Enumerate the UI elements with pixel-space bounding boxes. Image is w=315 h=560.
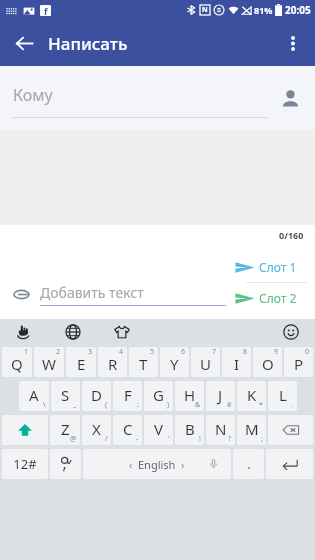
button[interactable]: 5	[129, 347, 158, 377]
staticText: 5	[150, 347, 155, 357]
staticText: Слот 2	[259, 290, 297, 306]
button[interactable]: Символы	[50, 449, 81, 479]
button[interactable]: D	[82, 381, 111, 411]
button[interactable]: Язык	[48, 319, 97, 345]
button[interactable]: L	[268, 381, 297, 411]
staticText: /	[105, 434, 108, 444]
staticText: D	[91, 385, 102, 405]
button[interactable]: V	[144, 415, 173, 445]
button[interactable]: J	[206, 381, 235, 411]
staticText: E	[77, 354, 86, 374]
staticText: 9	[274, 347, 279, 357]
staticText: T	[139, 354, 148, 374]
staticText: ?	[228, 434, 232, 444]
button[interactable]: Ещё	[275, 25, 311, 61]
staticText: N	[215, 419, 227, 439]
button[interactable]: Рукописный ввод	[0, 319, 48, 345]
staticText: M	[245, 419, 259, 439]
button[interactable]: 7	[191, 347, 220, 377]
staticText: 7	[212, 347, 217, 357]
staticText: '	[168, 434, 170, 444]
staticText: 2	[56, 347, 61, 357]
button[interactable]: Слот 2	[232, 283, 315, 313]
button[interactable]: Выбрать контакт	[273, 81, 307, 115]
button[interactable]: 1	[2, 347, 32, 377]
button[interactable]: H	[175, 381, 204, 411]
staticText: X	[92, 419, 101, 439]
staticText: Добавить текст	[40, 283, 144, 302]
staticText: K	[247, 385, 257, 405]
button[interactable]: Z	[50, 415, 80, 445]
button[interactable]: K	[237, 381, 266, 411]
button[interactable]: 2	[34, 347, 64, 377]
staticText: ‹	[129, 457, 133, 472]
button[interactable]: A	[19, 381, 49, 411]
button[interactable]: Тема	[97, 319, 146, 345]
staticText: *	[259, 400, 263, 410]
staticText: Написать	[48, 32, 128, 55]
staticText: O	[262, 354, 274, 374]
button[interactable]: Ввод	[266, 449, 313, 479]
button[interactable]: 3	[66, 347, 96, 377]
button[interactable]: 4	[98, 347, 127, 377]
button[interactable]: 12#	[2, 449, 48, 479]
button[interactable]: B	[175, 415, 204, 445]
staticText: U	[200, 354, 211, 374]
button[interactable]: 8	[222, 347, 251, 377]
staticText: Q	[11, 354, 23, 374]
staticText: J	[218, 385, 223, 405]
staticText: &	[195, 400, 201, 410]
staticText: _	[73, 400, 77, 410]
button[interactable]: 9	[253, 347, 282, 377]
staticText: ›	[181, 457, 185, 472]
staticText: C	[123, 419, 133, 439]
staticText: G	[153, 385, 164, 405]
staticText: Y	[170, 354, 179, 374]
staticText: 12#	[13, 455, 37, 473]
staticText: English	[138, 457, 176, 472]
staticText: A	[29, 385, 39, 405]
staticText: 0	[305, 347, 310, 357]
button[interactable]: Назад	[8, 27, 40, 59]
button[interactable]: .	[233, 449, 264, 479]
button[interactable]: C	[113, 415, 142, 445]
button[interactable]: Shift	[2, 415, 48, 445]
staticText: )	[167, 400, 170, 410]
button[interactable]: Удалить	[268, 415, 313, 445]
staticText: \	[43, 400, 46, 410]
button[interactable]: Прикрепить	[6, 279, 36, 309]
staticText: 81%	[254, 4, 273, 16]
staticText: 6	[181, 347, 186, 357]
button[interactable]: 0	[284, 347, 313, 377]
staticText: 1	[24, 347, 29, 357]
button[interactable]: 6	[160, 347, 189, 377]
button[interactable]: Эмодзи	[266, 319, 315, 345]
staticText: .	[247, 455, 251, 473]
staticText: Кому	[13, 84, 53, 106]
staticText: N	[202, 5, 208, 15]
staticText: P	[294, 354, 304, 374]
button[interactable]: X	[82, 415, 111, 445]
staticText: 20:05	[285, 3, 311, 17]
staticText: R	[108, 354, 118, 374]
staticText: F	[124, 385, 132, 405]
button[interactable]: N	[206, 415, 235, 445]
staticText: S	[61, 385, 70, 405]
staticText: V	[154, 419, 164, 439]
staticText: ;	[261, 434, 263, 444]
staticText: (	[105, 400, 108, 410]
button[interactable]: G	[144, 381, 173, 411]
staticText: #	[227, 400, 232, 410]
button[interactable]: M	[237, 415, 266, 445]
staticText: 0/160	[279, 229, 304, 241]
staticText: Z	[61, 419, 70, 439]
staticText: L	[279, 385, 287, 405]
button[interactable]: ‹	[83, 449, 231, 479]
button[interactable]: S	[51, 381, 80, 411]
button[interactable]: F	[113, 381, 142, 411]
staticText: W	[42, 354, 56, 374]
staticText: .	[292, 400, 294, 410]
staticText: H	[184, 385, 196, 405]
button[interactable]: Слот 1	[232, 252, 315, 282]
staticText: :	[137, 400, 139, 410]
